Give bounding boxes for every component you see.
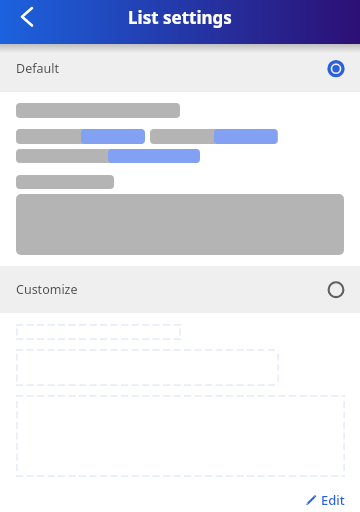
staticText: Edit: [321, 491, 345, 509]
button[interactable]: Customize: [0, 266, 360, 313]
button[interactable]: Edit: [304, 490, 345, 510]
staticText: Default: [16, 60, 59, 77]
button[interactable]: Default: [0, 44, 360, 92]
staticText: List settings: [0, 6, 360, 29]
button[interactable]: Selected: [324, 56, 348, 80]
button[interactable]: Back: [0, 0, 48, 44]
staticText: Customize: [16, 281, 78, 298]
button[interactable]: Select: [324, 278, 348, 302]
